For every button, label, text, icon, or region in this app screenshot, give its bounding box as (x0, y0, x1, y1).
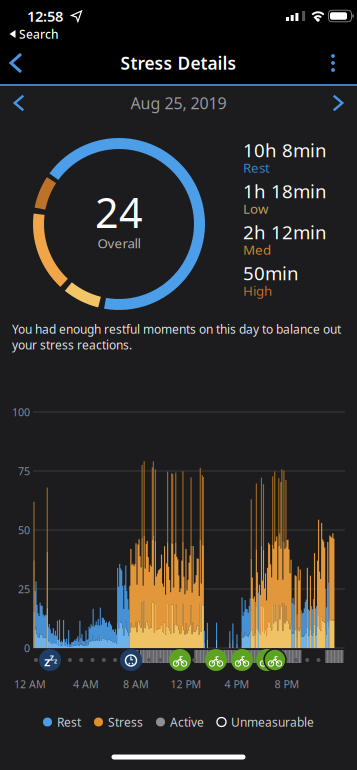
button[interactable]: Previous day (13, 94, 24, 111)
staticText: 10h 8min (243, 138, 327, 162)
staticText: 100 (12, 405, 30, 419)
staticText: 50 (18, 523, 30, 537)
staticText: Stress (108, 714, 143, 730)
staticText: Overall (97, 234, 140, 252)
staticText: Unmeasurable (231, 714, 314, 730)
staticText: Rest (57, 714, 81, 730)
staticText: z (49, 651, 54, 663)
staticText: High (243, 282, 272, 299)
staticText: 4 AM (73, 677, 99, 691)
button[interactable]: Next day (332, 94, 343, 111)
staticText: 8 AM (123, 677, 149, 691)
staticText: Med (243, 241, 271, 258)
staticText: 2h 12min (243, 220, 327, 244)
staticText: 75 (18, 464, 30, 478)
staticText: Active (170, 714, 204, 730)
staticText: 4 PM (224, 677, 249, 691)
staticText: 12 AM (14, 677, 46, 691)
staticText: 50min (243, 261, 299, 285)
button[interactable]: More options (331, 54, 335, 72)
staticText: 25 (18, 582, 30, 596)
staticText: Search (19, 26, 59, 42)
staticText: 8 PM (274, 677, 299, 691)
staticText: Low (243, 200, 268, 217)
staticText: z (54, 657, 57, 665)
staticText: You had enough restful moments on this d… (12, 321, 341, 353)
button[interactable]: Back (9, 52, 22, 73)
staticText: 12:58 (27, 6, 63, 26)
staticText: z (44, 652, 50, 670)
staticText: 24 (95, 185, 143, 239)
staticText: 0 (24, 641, 30, 655)
staticText: Stress Details (120, 51, 236, 74)
staticText: 12 PM (170, 677, 201, 691)
staticText: Aug 25, 2019 (130, 92, 226, 114)
staticText: 1h 18min (243, 179, 327, 203)
staticText: Rest (243, 159, 270, 176)
